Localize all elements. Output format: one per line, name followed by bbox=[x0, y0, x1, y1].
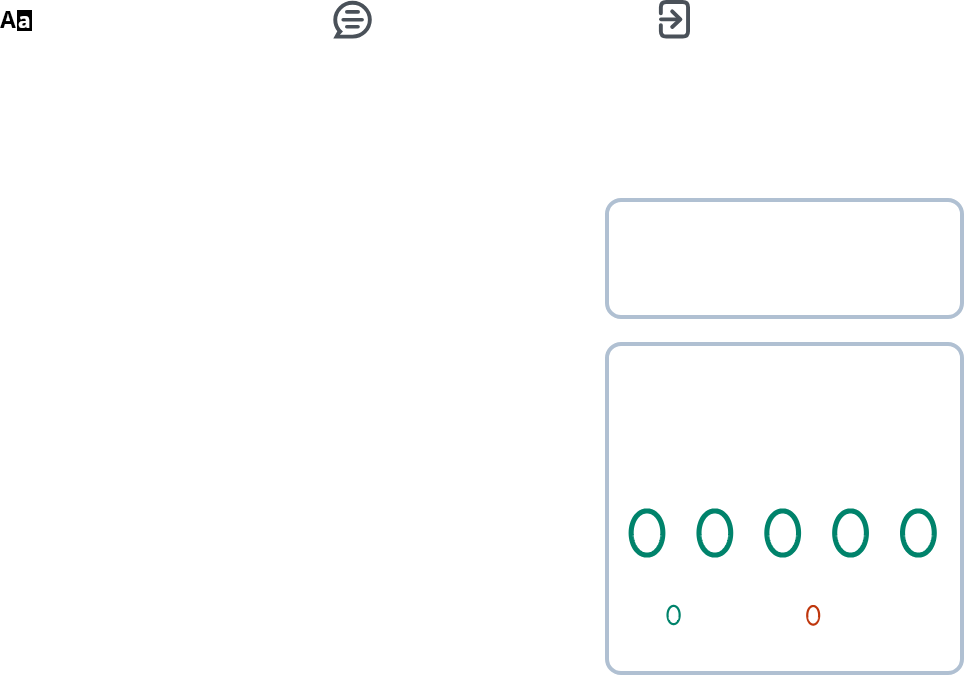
staticText: a bbox=[18, 6, 31, 35]
staticText: A bbox=[0, 3, 16, 34]
button[interactable]: Comments bbox=[331, 0, 375, 42]
button[interactable]: Log in bbox=[654, 0, 694, 42]
button[interactable]: Text style bbox=[0, 0, 36, 40]
button[interactable]: Card bbox=[605, 198, 964, 319]
button[interactable]: Score card bbox=[605, 342, 964, 675]
